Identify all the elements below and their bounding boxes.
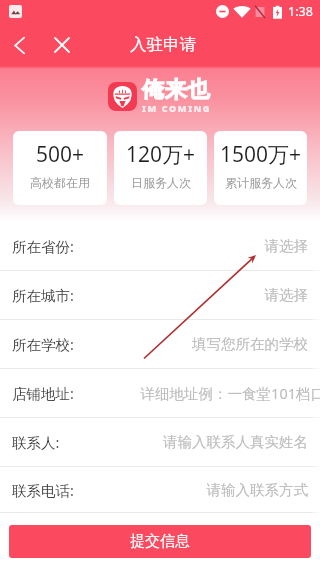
- button[interactable]: Back: [5, 31, 33, 59]
- staticText: 1500万+: [220, 140, 302, 169]
- staticText: 联系电话:: [12, 480, 74, 500]
- staticText: 请选择: [264, 237, 308, 255]
- staticText: 提交信息: [130, 532, 190, 551]
- staticText: 日服务人次: [131, 175, 191, 190]
- staticText: 请输入联系方式: [206, 481, 308, 499]
- button[interactable]: 所在学校:: [0, 320, 320, 369]
- staticText: 入驻申请: [130, 34, 196, 55]
- button[interactable]: 联系电话:: [0, 467, 320, 513]
- button[interactable]: 店铺地址:: [0, 369, 320, 418]
- staticText: 请选择: [264, 286, 308, 304]
- staticText: 详细地址例：一食堂101档口: [140, 383, 320, 403]
- staticText: 俺来也: [142, 76, 211, 104]
- staticText: 1:38: [288, 3, 313, 20]
- staticText: 高校都在用: [30, 175, 90, 190]
- button[interactable]: 所在城市:: [0, 271, 320, 320]
- staticText: 所在省份:: [12, 236, 74, 256]
- button[interactable]: 所在省份:: [0, 222, 320, 271]
- button[interactable]: Close: [48, 31, 76, 59]
- staticText: 联系人:: [12, 432, 60, 452]
- staticText: 店铺地址:: [12, 383, 74, 403]
- button[interactable]: 提交信息: [9, 525, 311, 558]
- staticText: 累计服务人次: [225, 175, 297, 190]
- button[interactable]: 联系人:: [0, 418, 320, 467]
- staticText: 填写您所在的学校: [192, 335, 308, 353]
- staticText: 所在学校:: [12, 334, 74, 354]
- staticText: 所在城市:: [12, 285, 74, 305]
- staticText: 500+: [36, 140, 85, 169]
- staticText: 请输入联系人真实姓名: [163, 433, 308, 451]
- staticText: IM COMING: [142, 102, 212, 114]
- staticText: 120万+: [126, 140, 196, 169]
